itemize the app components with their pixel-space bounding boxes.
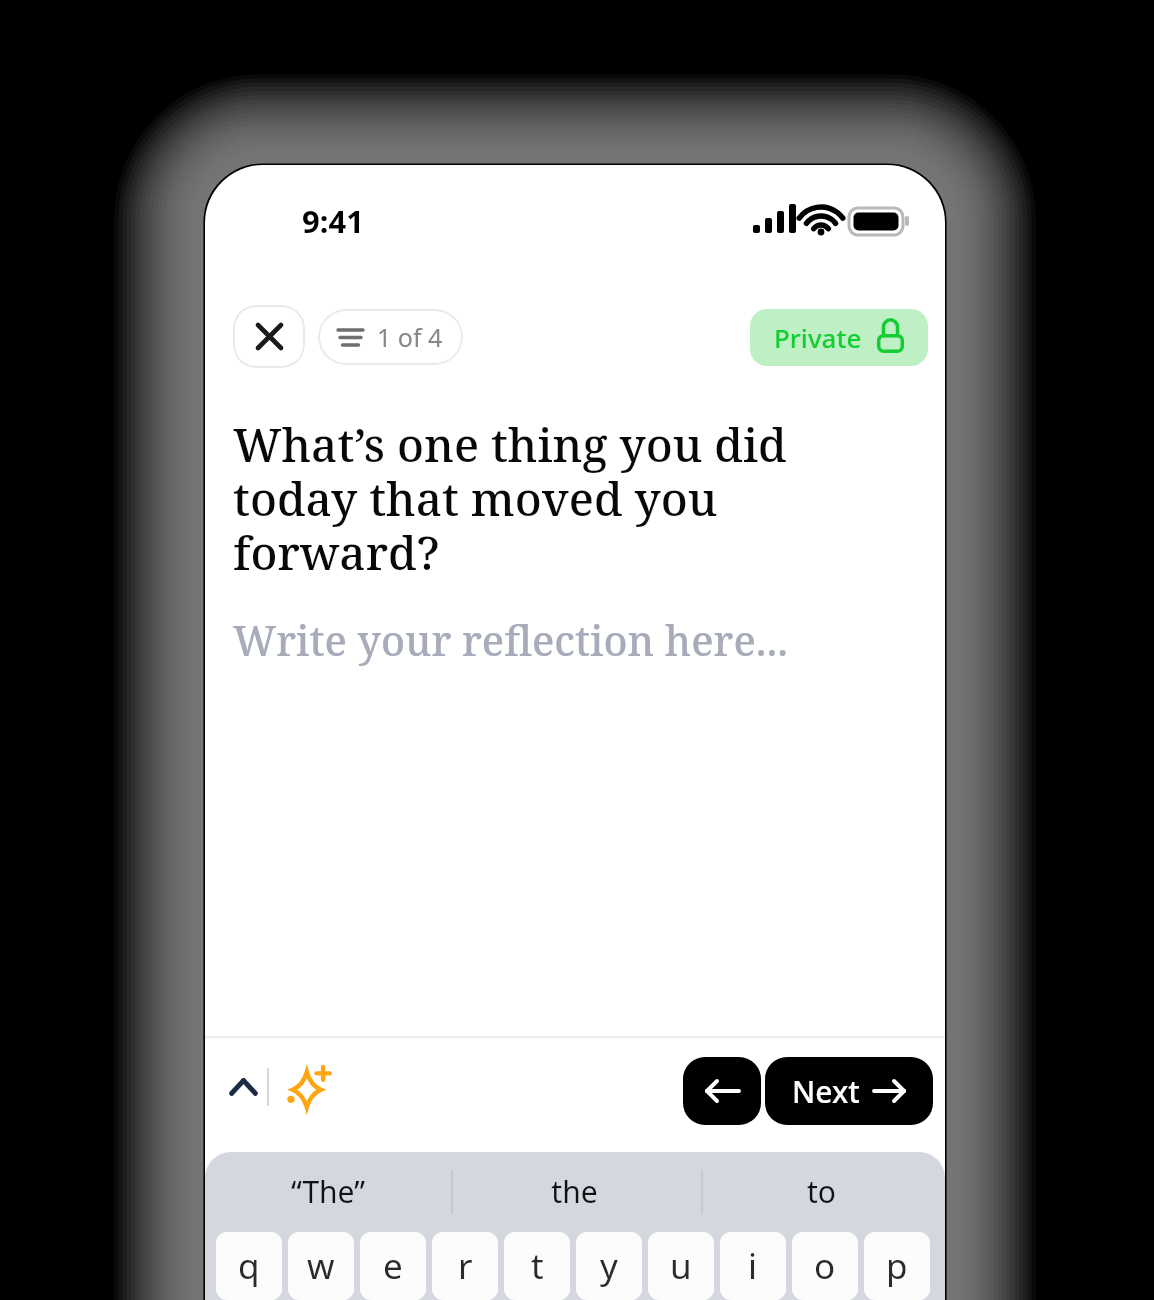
staticText: e [383,1242,403,1290]
staticText: y [600,1242,618,1290]
button[interactable]: p [864,1232,930,1300]
button[interactable]: Expand toolbar [219,1063,267,1111]
button[interactable]: AI assist [283,1061,335,1113]
staticText: u [670,1242,692,1290]
button[interactable]: w [288,1232,354,1300]
staticText: 1 of 4 [377,320,443,354]
button[interactable]: to [698,1152,945,1230]
button[interactable]: Private [750,309,928,366]
button[interactable]: “The” [205,1152,451,1230]
staticText: Write your reflection here... [233,612,789,668]
button[interactable]: y [576,1232,642,1300]
button[interactable]: Next [765,1057,933,1125]
staticText: Private [774,320,862,355]
button[interactable]: the [451,1152,698,1230]
button[interactable]: q [216,1232,282,1300]
button[interactable]: 1 of 4 [318,309,463,365]
button[interactable]: t [504,1232,570,1300]
staticText: “The” [291,1171,365,1212]
staticText: Next [792,1071,860,1112]
button[interactable]: Previous [683,1057,761,1125]
staticText: i [748,1242,758,1290]
button[interactable]: i [720,1232,786,1300]
button[interactable]: r [432,1232,498,1300]
staticText: q [238,1242,260,1290]
staticText: o [814,1242,836,1290]
button[interactable]: u [648,1232,714,1300]
button[interactable]: e [360,1232,426,1300]
staticText: t [531,1242,544,1290]
staticText: What’s one thing you did today that move… [233,413,858,584]
staticText: p [886,1242,908,1290]
staticText: 9:41 [302,200,364,242]
button[interactable]: Close [233,305,305,368]
button[interactable]: o [792,1232,858,1300]
staticText: to [807,1171,836,1212]
staticText: the [551,1171,598,1212]
staticText: r [458,1242,473,1290]
staticText: w [307,1242,335,1290]
